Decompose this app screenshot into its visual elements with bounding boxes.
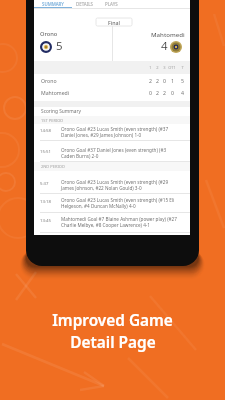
button[interactable]: 13:45: [34, 213, 190, 233]
staticText: 4: [181, 89, 184, 96]
button[interactable]: 14:58: [34, 124, 190, 141]
staticText: Final: [108, 19, 121, 26]
staticText: Daniel Jones, #29 James Johnson) 1-0: [61, 132, 142, 138]
staticText: DETAILS: [76, 1, 94, 7]
staticText: Orono: [40, 30, 58, 38]
staticText: OT1: [168, 65, 176, 70]
staticText: Helgeson, #4 Duncan McNally) 4-0: [61, 203, 136, 209]
staticText: 1ST PERIOD: [41, 118, 64, 123]
staticText: 2: [156, 65, 159, 70]
button[interactable]: 5:37: [34, 171, 190, 194]
staticText: 2ND PERIOD: [41, 164, 65, 169]
staticText: 13:45: [40, 217, 51, 223]
staticText: Improved Game: [52, 310, 173, 331]
staticText: 4: [161, 38, 168, 54]
staticText: 0: [163, 77, 166, 84]
staticText: Scoring Summary: [41, 108, 81, 115]
staticText: 14:58: [40, 127, 51, 133]
button[interactable]: PLAYS: [101, 0, 121, 8]
staticText: SUMMARY: [42, 1, 64, 7]
button[interactable]: 13:18: [34, 194, 190, 213]
staticText: Mahtomedi: [41, 89, 70, 96]
button[interactable]: 15:51: [34, 141, 190, 162]
staticText: Caden Burns) 2-0: [61, 153, 99, 159]
staticText: Mahtomedi: [151, 30, 185, 38]
staticText: 3: [163, 65, 166, 70]
staticText: Orono Goal #23 Lucas Smith (even strengt…: [61, 126, 169, 132]
staticText: 2: [163, 89, 166, 96]
staticText: 2: [149, 77, 152, 84]
staticText: 15:51: [40, 148, 51, 154]
staticText: 5:37: [40, 180, 49, 186]
staticText: 5: [56, 38, 63, 54]
staticText: James Johnson, #22 Nolan Gould) 3-0: [61, 185, 142, 191]
staticText: Orono: [41, 77, 57, 84]
button[interactable]: SUMMARY: [39, 0, 66, 8]
staticText: 1: [171, 77, 174, 84]
staticText: PLAYS: [105, 1, 118, 7]
staticText: Mahtomedi Goal #7 Blaine Ashman (power p…: [61, 216, 177, 222]
staticText: Orono Goal #37 Daniel Jones (even streng…: [61, 147, 167, 153]
staticText: 13:18: [40, 198, 51, 204]
staticText: Charlie Melbye, #8 Cooper Lawrence) 4-1: [61, 222, 150, 228]
staticText: T: [181, 65, 184, 70]
button[interactable]: DETAILS: [73, 0, 96, 8]
staticText: Orono Goal #23 Lucas Smith (even strengt…: [61, 179, 169, 185]
staticText: 5: [181, 77, 184, 84]
staticText: 1: [149, 65, 152, 70]
staticText: Orono Goal #23 Lucas Smith (even strengt…: [61, 197, 175, 203]
staticText: Detail Page: [70, 332, 156, 353]
staticText: 0: [149, 89, 152, 96]
staticText: 2: [156, 77, 159, 84]
staticText: 2: [156, 89, 159, 96]
staticText: 0: [171, 89, 174, 96]
